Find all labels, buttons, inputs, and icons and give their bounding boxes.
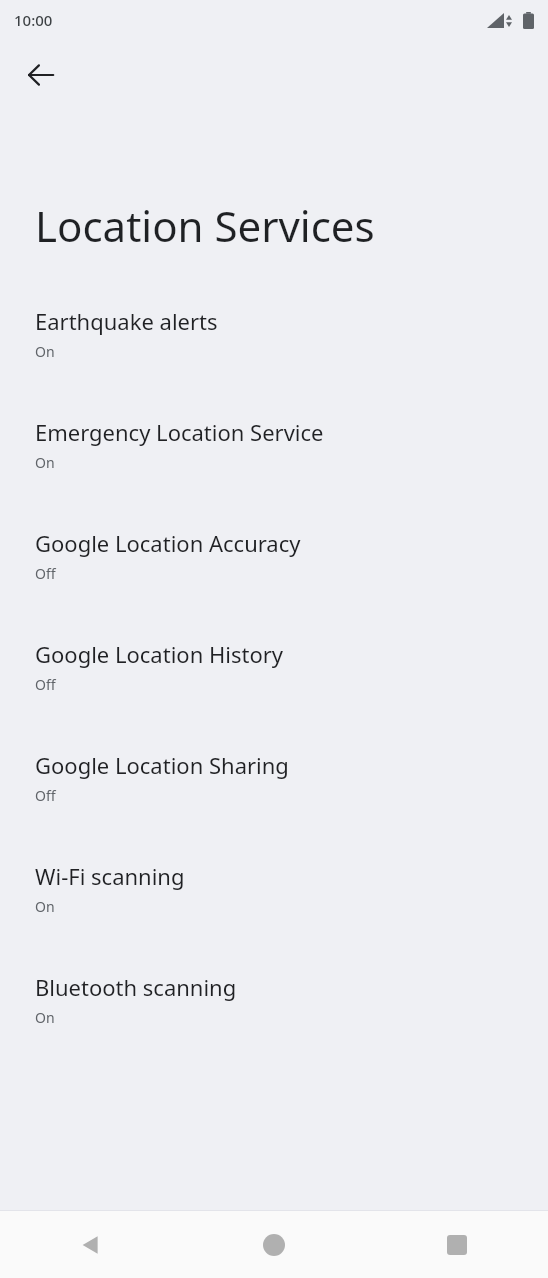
staticText: Off [35,675,56,694]
button[interactable]: Home [182,1211,365,1278]
staticText: Earthquake alerts [35,306,218,336]
button[interactable]: Emergency Location Service [0,409,548,520]
button[interactable]: Earthquake alerts [0,298,548,409]
staticText: Bluetooth scanning [35,972,237,1002]
staticText: Google Location History [35,639,284,669]
button[interactable]: Bluetooth scanning [0,964,548,1075]
staticText: On [35,897,55,916]
button[interactable]: Recent apps [365,1211,548,1278]
button[interactable]: Google Location Sharing [0,742,548,853]
button[interactable]: Back [17,51,65,99]
button[interactable]: Wi-Fi scanning [0,853,548,964]
staticText: Off [35,786,56,805]
staticText: Location Services [35,197,375,254]
staticText: Off [35,564,56,583]
staticText: Google Location Accuracy [35,528,301,558]
staticText: 10:00 [14,10,53,30]
staticText: Wi-Fi scanning [35,861,185,891]
staticText: Google Location Sharing [35,750,289,780]
button[interactable]: Google Location History [0,631,548,742]
staticText: On [35,1008,55,1027]
staticText: Emergency Location Service [35,417,324,447]
staticText: On [35,453,55,472]
button[interactable]: Google Location Accuracy [0,520,548,631]
button[interactable]: Back [0,1211,182,1278]
staticText: On [35,342,55,361]
